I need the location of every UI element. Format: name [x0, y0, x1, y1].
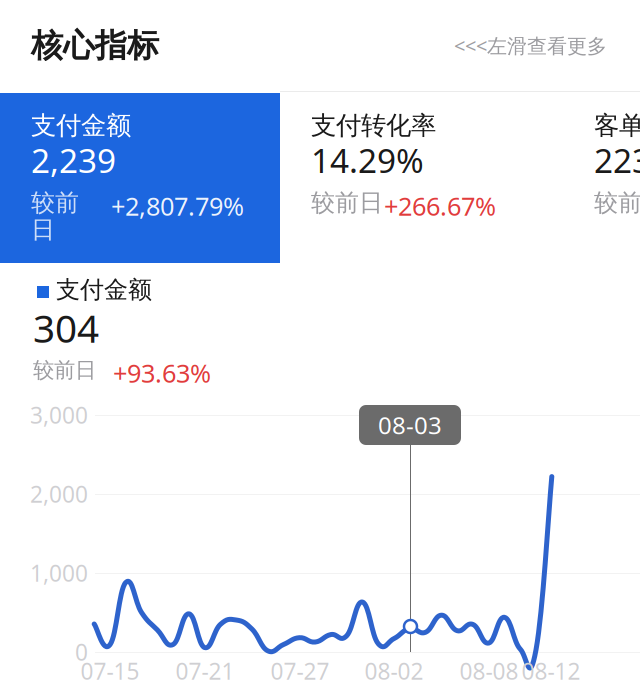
- staticText: <<<左滑查看更多: [454, 32, 607, 59]
- staticText: 2,000: [30, 479, 88, 509]
- staticText: 较前日: [33, 357, 96, 383]
- staticText: +93.63%: [113, 356, 211, 390]
- staticText: 08-08: [459, 656, 518, 686]
- button[interactable]: 客单价: [563, 93, 640, 263]
- staticText: 核心指标: [31, 26, 159, 65]
- staticText: 0: [75, 637, 88, 667]
- staticText: 223.90: [594, 138, 640, 182]
- staticText: 304: [33, 302, 99, 353]
- button[interactable]: 支付金额: [0, 93, 280, 263]
- staticText: +2,807.79%: [111, 189, 244, 223]
- staticText: 较前: [31, 188, 79, 217]
- button[interactable]: <<<左滑查看更多: [454, 32, 609, 59]
- staticText: 2,239: [31, 138, 116, 182]
- staticText: 08-12: [521, 656, 580, 686]
- staticText: 07-21: [175, 656, 234, 686]
- staticText: 支付金额: [31, 110, 131, 141]
- staticText: 07-15: [80, 656, 139, 686]
- staticText: 14.29%: [311, 138, 424, 182]
- staticText: 08-03: [378, 409, 442, 441]
- staticText: 日: [31, 215, 55, 244]
- staticText: 客单价: [594, 110, 640, 141]
- staticText: 支付转化率: [311, 110, 436, 141]
- staticText: 较前日: [311, 188, 383, 217]
- staticText: 3,000: [30, 400, 88, 430]
- staticText: 较前日: [594, 188, 640, 217]
- button[interactable]: 支付转化率: [280, 93, 563, 263]
- staticText: 支付金额: [56, 275, 152, 304]
- staticText: 08-02: [364, 656, 423, 686]
- staticText: 07-27: [270, 656, 329, 686]
- staticText: +266.67%: [384, 189, 496, 223]
- staticText: 1,000: [30, 558, 88, 588]
